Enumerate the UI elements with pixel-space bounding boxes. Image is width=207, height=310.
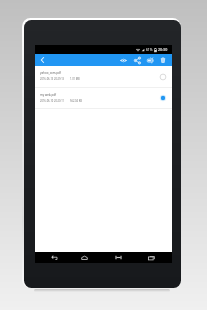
button[interactable]: Print <box>144 54 156 66</box>
button[interactable]: my web.pdf <box>35 88 172 108</box>
staticText: my web.pdf <box>40 93 56 97</box>
button[interactable]: Select <box>158 72 168 82</box>
staticText: 562.04 KB <box>70 99 82 102</box>
button[interactable]: Split screen <box>111 252 125 263</box>
staticText: 61% <box>146 48 153 52</box>
button[interactable]: Recents <box>144 252 158 263</box>
button[interactable]: Selected <box>158 93 168 103</box>
staticText: 2016-06-10 20:20:11 <box>40 99 65 102</box>
button[interactable]: Delete <box>157 54 169 66</box>
staticText: 1.01 MB <box>70 77 80 80</box>
button[interactable]: Preview <box>117 54 129 66</box>
button[interactable]: Back <box>47 252 61 263</box>
button[interactable]: Share <box>131 54 143 66</box>
button[interactable]: yahoo_com.pdf <box>35 66 172 87</box>
staticText: 20:30 <box>158 47 168 52</box>
staticText: yahoo_com.pdf <box>40 71 61 75</box>
staticText: 2016-06-13 20:29:13 <box>40 77 65 80</box>
button[interactable]: Home <box>77 252 91 263</box>
button[interactable]: Back <box>37 54 47 66</box>
